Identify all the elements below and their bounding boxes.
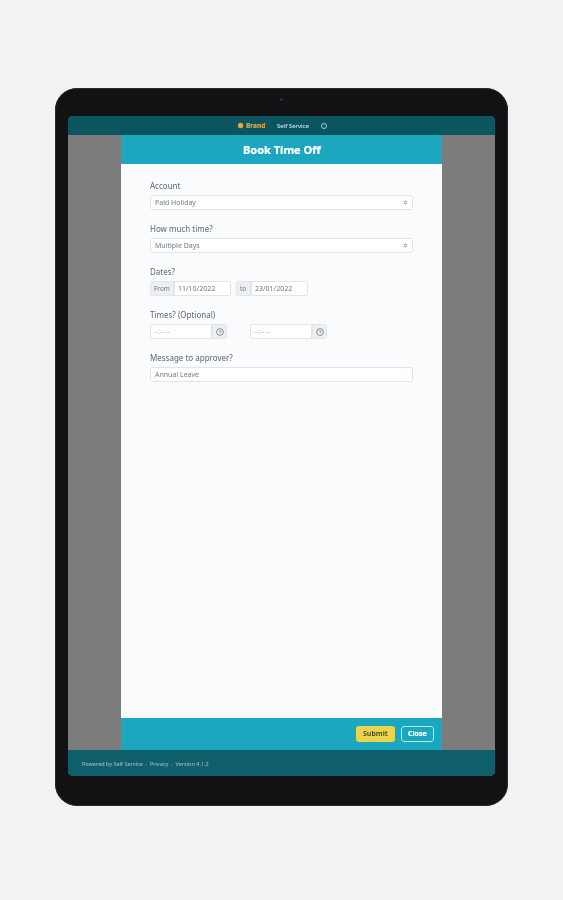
button[interactable]: Pick time	[312, 324, 327, 339]
staticText: Close	[408, 729, 427, 739]
staticText: --:-- --	[154, 327, 170, 336]
button[interactable]: Close	[401, 726, 434, 742]
staticText: Powered by Self Service · Privacy · Vers…	[82, 760, 209, 767]
staticText: Account	[150, 180, 181, 191]
staticText: Message to approver?	[150, 352, 233, 363]
staticText: From	[154, 284, 170, 293]
staticText: Submit	[363, 729, 388, 739]
staticText: How much time?	[150, 223, 213, 234]
staticText: Brand	[246, 121, 266, 130]
staticText: --:-- --	[254, 327, 270, 336]
staticText: 11/10/2022	[178, 284, 216, 294]
staticText: Paid Holiday	[155, 198, 196, 208]
staticText: Multiple Days	[155, 241, 200, 251]
button[interactable]: Paid Holiday	[150, 195, 413, 210]
button[interactable]: 23/01/2022	[251, 281, 308, 296]
button[interactable]: Multiple Days	[150, 238, 413, 253]
staticText: Annual Leave	[155, 370, 200, 380]
button[interactable]: 11/10/2022	[174, 281, 231, 296]
button[interactable]: --:-- --	[250, 324, 312, 339]
staticText: Book Time Off	[243, 142, 321, 157]
button[interactable]: Submit	[356, 726, 395, 742]
button[interactable]: Pick time	[212, 324, 227, 339]
staticText: Dates?	[150, 266, 176, 277]
button[interactable]: --:-- --	[150, 324, 212, 339]
staticText: Self Service	[277, 122, 309, 130]
staticText: to	[240, 284, 247, 293]
staticText: 23/01/2022	[255, 284, 293, 294]
staticText: Times? (Optional)	[150, 309, 216, 320]
button[interactable]: Brand	[68, 116, 495, 135]
button[interactable]: Annual Leave	[150, 367, 413, 382]
